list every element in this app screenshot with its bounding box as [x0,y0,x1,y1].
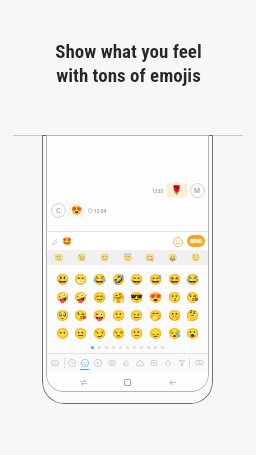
staticText: 😉 [77,253,87,262]
button[interactable]: Smileys [78,353,91,372]
staticText: 😁 [74,273,88,285]
staticText: 😐 [130,309,144,321]
staticText: 😗 [168,291,182,303]
button[interactable]: Symbols [161,353,175,372]
other: Attach [50,237,59,246]
button[interactable]: 🤪 [55,289,70,304]
staticText: M [194,186,201,195]
staticText: 🤫 [168,309,182,321]
button[interactable]: 🤗 [111,289,126,304]
staticText: 🙂 [112,309,126,321]
button[interactable]: 🤔 [185,307,200,322]
button[interactable]: 😃 [55,271,70,286]
button[interactable]: Food [105,353,119,372]
button[interactable]: 😅 [148,271,163,286]
button[interactable]: 😆 [167,271,182,286]
staticText: Show what you feel with tons of emojis [55,40,202,87]
button[interactable]: Flags [175,353,189,372]
staticText: 😘 [186,291,200,303]
button[interactable]: Objects [147,353,161,372]
button[interactable]: C [51,203,66,218]
staticText: 😪 [168,327,182,339]
button[interactable]: Travel [133,353,147,372]
staticText: 😘 [74,309,88,321]
button[interactable]: 😏 [92,325,107,340]
button[interactable]: Animals [91,353,105,372]
staticText: 🤪 [56,291,70,303]
button[interactable]: 😶 [55,325,70,340]
button[interactable]: 🤣 [111,271,126,286]
staticText: 😌 [191,253,201,262]
button[interactable]: 😜 [92,307,107,322]
button[interactable]: 😗 [167,289,182,304]
staticText: 🤪 [74,291,88,303]
staticText: 😐 [74,327,88,339]
button[interactable]: 🤭 [148,307,163,322]
button[interactable]: 😘 [185,289,200,304]
button[interactable]: 😐 [129,307,144,322]
button[interactable]: 😄 [129,271,144,286]
button[interactable]: 🙁 [129,325,144,340]
staticText: 😊 [93,291,107,303]
staticText: 🤭 [149,309,163,321]
staticText: 😊 [100,253,110,262]
button[interactable]: Recent emoji [65,353,78,372]
button[interactable]: SEND [187,235,205,247]
button[interactable]: 😍 [148,289,163,304]
button[interactable]: 🙂 [111,307,126,322]
staticText: 12:33 [152,188,164,194]
button[interactable]: 🥺 [55,307,70,322]
button[interactable]: 😎 [129,289,144,304]
staticText: 🥺 [56,309,70,321]
staticText: 😂 [186,273,200,285]
button[interactable]: Activities [119,353,133,372]
staticText: 😶 [56,327,70,339]
button[interactable]: Keyboard [46,353,64,372]
staticText: 😞 [149,327,163,339]
staticText: 😅 [149,273,163,285]
staticText: 😜 [93,309,107,321]
staticText: 😍 [149,291,163,303]
button[interactable]: Recents [76,375,91,390]
staticText: 😂 [93,273,107,285]
staticText: 😮 [186,327,200,339]
button[interactable]: 😊 [92,289,107,304]
button[interactable]: 🤫 [167,307,182,322]
staticText: 😛 [168,253,178,262]
staticText: 😆 [168,273,182,285]
button[interactable]: Back [165,375,180,390]
staticText: 😍 [71,205,83,216]
button[interactable]: 😮 [185,325,200,340]
staticText: 😇 [123,253,133,262]
staticText: SEND [190,238,203,244]
button[interactable]: Home [120,375,135,390]
staticText: 🌹 [171,185,183,196]
button[interactable]: 😂 [185,271,200,286]
button[interactable]: 😒 [111,325,126,340]
button[interactable]: 🤪 [73,289,88,304]
staticText: 🤔 [186,309,200,321]
button[interactable]: 😪 [167,325,182,340]
staticText: 😃 [56,273,70,285]
button[interactable]: 😘 [73,307,88,322]
button[interactable]: Emoji picker [172,236,183,247]
staticText: 🤩 [62,237,72,246]
button[interactable]: Backspace [190,353,209,372]
button[interactable]: 😞 [148,325,163,340]
staticText: 😒 [112,327,126,339]
staticText: 🤣 [112,273,126,285]
staticText: 🙁 [130,327,144,339]
button[interactable]: 😐 [73,325,88,340]
staticText: 🤗 [112,291,126,303]
staticText: 🙂 [54,253,64,262]
button[interactable]: M [190,183,205,198]
staticText: 😄 [130,273,144,285]
staticText: 12:34 [94,208,107,214]
button[interactable]: 😁 [73,271,88,286]
button[interactable]: 😂 [92,271,107,286]
staticText: C [56,206,61,215]
staticText: 😏 [93,327,107,339]
staticText: 😋 [145,253,155,262]
staticText: 😎 [130,291,144,303]
